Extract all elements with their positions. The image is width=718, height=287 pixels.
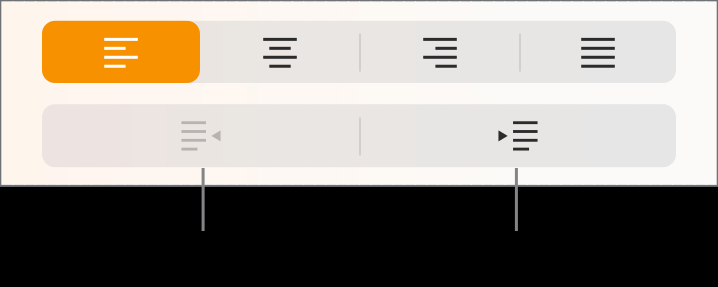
button[interactable]: Decrease indent — [42, 104, 360, 167]
button[interactable]: Align center — [200, 21, 360, 83]
button[interactable]: Align right — [360, 21, 520, 83]
button[interactable]: Align left — [42, 21, 200, 83]
button[interactable]: Increase indent — [360, 104, 676, 167]
button[interactable]: Justify — [520, 21, 676, 83]
